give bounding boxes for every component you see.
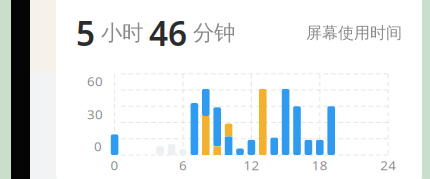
staticText: 5 bbox=[76, 11, 95, 55]
staticText: 18 bbox=[312, 156, 328, 174]
staticText: 0 bbox=[111, 156, 119, 174]
staticText: 小时 bbox=[95, 20, 149, 46]
staticText: 46 bbox=[149, 11, 187, 55]
staticText: 60 bbox=[87, 72, 103, 90]
staticText: 24 bbox=[380, 156, 396, 174]
staticText: 6 bbox=[179, 156, 187, 174]
staticText: 分钟 bbox=[187, 20, 235, 46]
staticText: 30 bbox=[87, 105, 103, 123]
staticText: 屏幕使用时间 bbox=[306, 23, 402, 43]
staticText: 0 bbox=[94, 137, 102, 155]
staticText: 12 bbox=[243, 156, 259, 174]
